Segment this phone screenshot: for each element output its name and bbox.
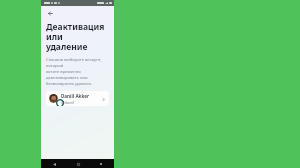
button[interactable]: Back [50,160,58,168]
button[interactable]: Recent apps [97,160,105,168]
button[interactable]: Home [74,160,82,168]
staticText: Сначала выберите аккаунт, который хотите… [46,57,109,87]
staticText: Daniil Akker [61,93,90,99]
button[interactable]: Open account [100,96,106,102]
button[interactable]: Back [46,9,55,18]
button[interactable]: Daniil Akker [46,91,109,106]
staticText: Деактивация или удаление [46,21,109,53]
staticText: @daniil [61,100,75,105]
